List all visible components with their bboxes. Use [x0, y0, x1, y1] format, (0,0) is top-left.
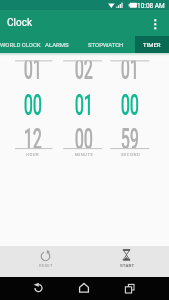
- staticText: WORLD CLOCK: [0, 41, 41, 48]
- staticText: 01: [24, 52, 42, 87]
- staticText: MINUTE: [75, 152, 94, 157]
- staticText: 01: [121, 52, 139, 87]
- staticText: 02: [75, 52, 93, 87]
- staticText: 00: [75, 122, 93, 157]
- button[interactable]: [13, 60, 53, 149]
- staticText: 00: [24, 88, 42, 123]
- button[interactable]: [20, 277, 60, 300]
- button[interactable]: [64, 277, 104, 300]
- button[interactable]: ALARMS: [42, 36, 72, 53]
- staticText: 12: [24, 122, 42, 157]
- staticText: RESET: [39, 263, 53, 268]
- staticText: SECOND: [121, 152, 141, 157]
- button[interactable]: TIMER: [135, 36, 169, 53]
- staticText: Clock: [7, 17, 32, 29]
- button[interactable]: [0, 246, 85, 277]
- button[interactable]: [64, 60, 104, 149]
- button[interactable]: [108, 277, 148, 300]
- staticText: 00: [121, 88, 139, 123]
- button[interactable]: [110, 60, 150, 149]
- button[interactable]: STOPWATCH: [85, 36, 127, 53]
- staticText: HOUR: [26, 152, 40, 157]
- staticText: ALARMS: [45, 41, 69, 48]
- button[interactable]: [135, 36, 169, 53]
- staticText: 10:08 AM: [137, 2, 165, 10]
- staticText: START: [120, 263, 135, 268]
- staticText: STOPWATCH: [88, 41, 124, 48]
- button[interactable]: [85, 246, 169, 277]
- staticText: 59: [121, 122, 139, 157]
- staticText: TIMER: [143, 41, 161, 48]
- staticText: 01: [75, 88, 93, 123]
- button[interactable]: WORLD CLOCK: [0, 36, 41, 53]
